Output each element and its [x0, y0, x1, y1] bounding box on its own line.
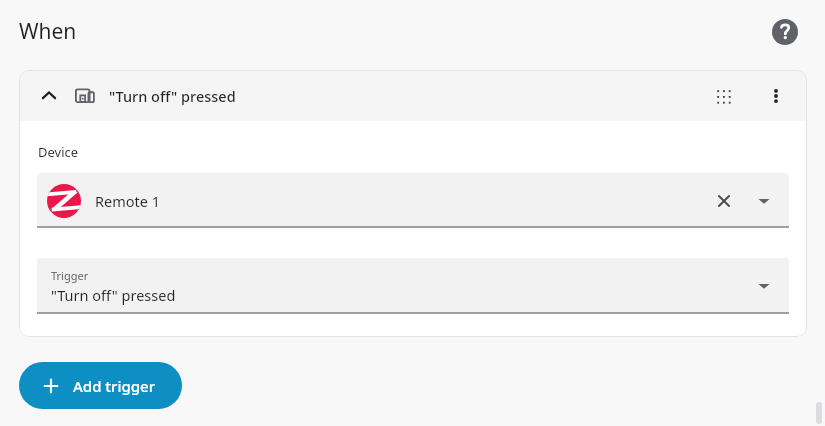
staticText: Trigger: [51, 268, 89, 283]
button[interactable]: Clear: [709, 186, 739, 216]
button[interactable]: Add trigger: [19, 362, 182, 409]
button[interactable]: Open trigger dropdown: [751, 273, 777, 299]
button[interactable]: Collapse: [19, 70, 807, 121]
button[interactable]: Open dropdown: [751, 188, 777, 214]
button[interactable]: Help: [765, 12, 805, 52]
staticText: "Turn off" pressed: [109, 86, 236, 106]
button[interactable]: Reorder: [707, 80, 739, 112]
staticText: Remote 1: [95, 191, 161, 211]
button[interactable]: Trigger: [37, 258, 789, 314]
button[interactable]: Remote 1: [37, 173, 789, 228]
button[interactable]: Collapse: [35, 82, 63, 110]
button[interactable]: More options: [760, 80, 792, 112]
staticText: When: [19, 17, 77, 46]
staticText: Add trigger: [73, 376, 156, 396]
staticText: "Turn off" pressed: [51, 285, 176, 305]
staticText: Device: [38, 143, 79, 161]
